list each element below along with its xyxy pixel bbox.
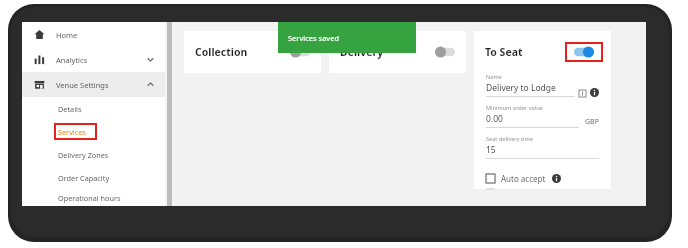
- button[interactable]: Order Capacity: [22, 166, 165, 189]
- staticText: Services: [58, 127, 86, 137]
- button[interactable]: Services: [22, 120, 165, 143]
- staticText: Delivery Zones: [58, 150, 109, 160]
- staticText: Auto accept: [501, 173, 546, 184]
- staticText: Services saved: [288, 33, 340, 43]
- button[interactable]: Collection: [184, 31, 321, 73]
- staticText: Seat delivery time: [486, 135, 533, 143]
- button[interactable]: Details: [22, 97, 165, 120]
- staticText: Analytics: [56, 55, 88, 65]
- staticText: Home: [56, 30, 78, 40]
- button[interactable]: Analytics: [22, 47, 165, 72]
- staticText: Delivery: [340, 45, 384, 59]
- staticText: To Seat: [485, 45, 523, 59]
- button[interactable]: Toggle off: [435, 46, 455, 58]
- staticText: 15: [486, 144, 496, 156]
- button[interactable]: Venue Settings: [22, 72, 165, 97]
- staticText: Minimum order value: [486, 104, 543, 112]
- staticText: Details: [58, 104, 82, 114]
- staticText: GBP: [585, 117, 599, 127]
- button[interactable]: Auto accept: [474, 170, 611, 186]
- button[interactable]: Toggle on: [574, 46, 594, 58]
- button[interactable]: Home: [22, 22, 165, 47]
- button[interactable]: Toggle off: [290, 46, 310, 58]
- staticText: 0.00: [486, 113, 503, 125]
- staticText: Collection: [195, 45, 248, 59]
- other: Delete: [579, 90, 586, 97]
- staticText: Venue Settings: [56, 80, 109, 90]
- staticText: Name: [486, 73, 502, 81]
- staticText: Order Capacity: [58, 173, 110, 183]
- button[interactable]: Delivery: [329, 31, 466, 73]
- staticText: Operational hours: [58, 193, 121, 203]
- button[interactable]: Delivery Zones: [22, 143, 165, 166]
- button[interactable]: Operational hours: [22, 189, 165, 206]
- staticText: Delivery to Lodge: [486, 82, 556, 94]
- button[interactable]: Services saved: [278, 22, 416, 53]
